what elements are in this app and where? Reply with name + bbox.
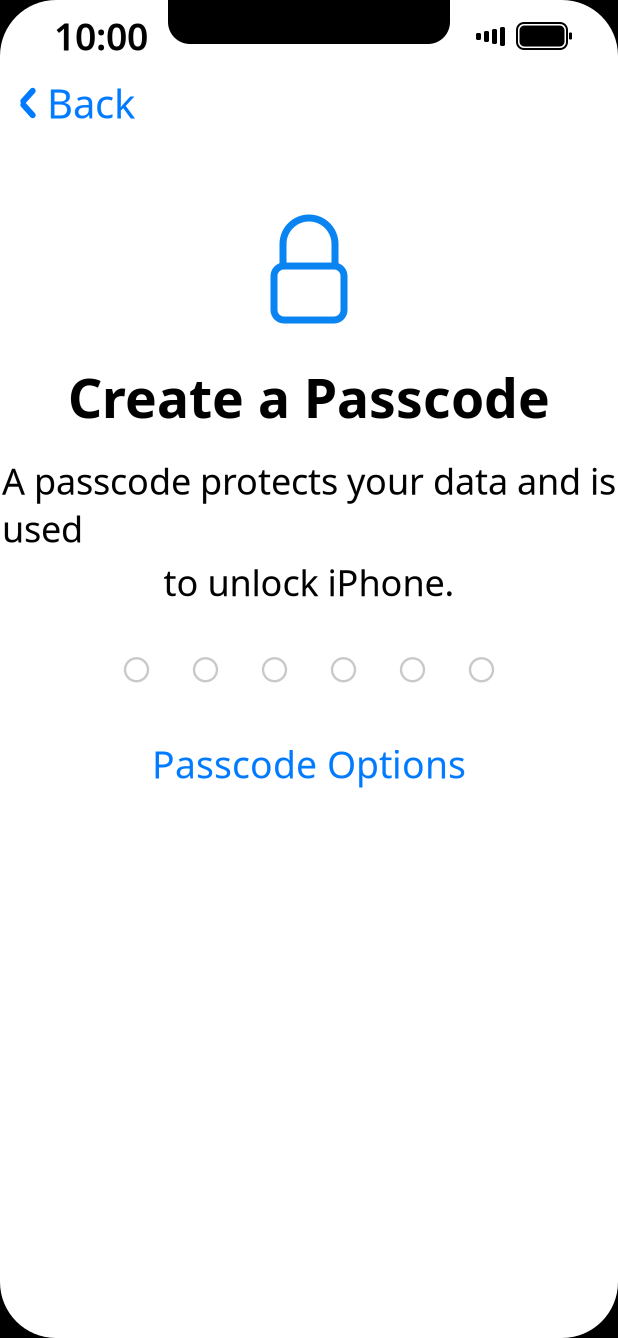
- staticText: A passcode protects your data and is use…: [2, 457, 616, 552]
- staticText: Back: [47, 76, 135, 129]
- staticText: to unlock iPhone.: [163, 558, 454, 606]
- staticText: 10:00: [54, 11, 148, 61]
- button[interactable]: Passcode Options: [132, 727, 486, 801]
- staticText: Passcode Options: [152, 739, 466, 789]
- button[interactable]: Back: [0, 66, 149, 139]
- staticText: Create a Passcode: [68, 362, 550, 433]
